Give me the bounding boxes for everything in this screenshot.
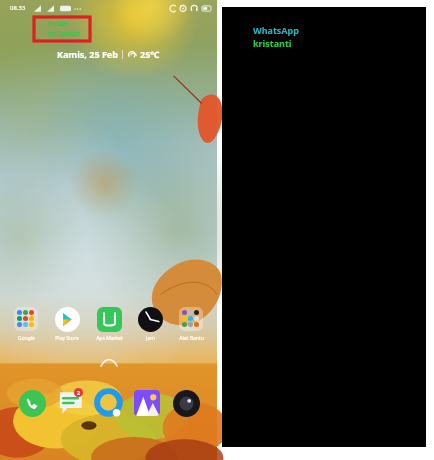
staticText: Pesan: [48, 19, 69, 29]
staticText: Aps Market: [96, 335, 123, 342]
button[interactable]: Gallery: [132, 388, 162, 418]
staticText: 25℃: [140, 48, 160, 60]
staticText: 08.33: [10, 4, 26, 12]
staticText: Alat Bantu: [179, 335, 204, 342]
button[interactable]: Camera: [171, 388, 201, 418]
button[interactable]: Open app drawer: [98, 358, 120, 368]
button[interactable]: Play Store: [48, 305, 86, 342]
staticText: WhatsApp: [253, 24, 299, 36]
staticText: Kamis, 25 Feb: [57, 48, 118, 60]
staticText: Play Store: [55, 335, 79, 342]
button[interactable]: Browser: [94, 388, 124, 418]
button[interactable]: Pesan: [34, 17, 90, 41]
button[interactable]: Alat Bantu: [172, 305, 210, 342]
staticText: Jam: [146, 335, 155, 342]
staticText: im3paket: [48, 29, 81, 39]
button[interactable]: Phone: [17, 388, 47, 418]
staticText: kristanti: [253, 37, 292, 49]
staticText: Google: [18, 335, 35, 342]
button[interactable]: Kamis, 25 Feb: [0, 48, 217, 60]
button[interactable]: Google: [7, 305, 45, 342]
staticText: 2: [77, 389, 81, 396]
button[interactable]: Aps Market: [90, 305, 128, 342]
button[interactable]: Messages: [55, 388, 85, 418]
button[interactable]: Jam: [131, 305, 169, 342]
